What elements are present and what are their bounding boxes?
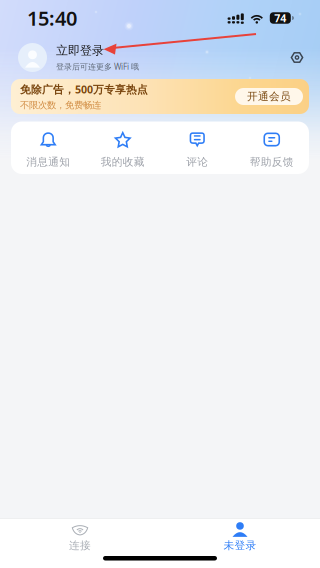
staticText: 免除广告，500万专享热点 xyxy=(20,82,148,96)
button[interactable]: 连接 xyxy=(0,518,160,552)
staticText: 不限次数，免费畅连 xyxy=(20,99,101,111)
staticText: 开通会员 xyxy=(247,90,291,103)
staticText: 连接 xyxy=(69,539,91,552)
staticText: 消息通知 xyxy=(26,155,70,169)
staticText: 登录后可连更多 WiFi 哦 xyxy=(56,61,139,72)
staticText: 评论 xyxy=(186,155,208,169)
button[interactable]: 免除广告，500万专享热点 xyxy=(11,79,309,114)
staticText: 立即登录 xyxy=(56,43,104,58)
staticText: 帮助反馈 xyxy=(250,155,294,169)
button[interactable]: 未登录 xyxy=(160,518,320,552)
button[interactable]: 帮助反馈 xyxy=(234,121,309,174)
button[interactable]: 评论 xyxy=(160,121,234,174)
button[interactable]: 我的收藏 xyxy=(85,121,160,174)
button[interactable]: 立即登录 xyxy=(18,43,282,72)
staticText: 未登录 xyxy=(223,539,256,552)
button[interactable]: 消息通知 xyxy=(11,121,85,174)
staticText: 我的收藏 xyxy=(101,155,145,169)
button[interactable]: 设置 xyxy=(282,42,312,72)
staticText: 15:40 xyxy=(27,5,77,31)
staticText: 74 xyxy=(274,11,286,25)
